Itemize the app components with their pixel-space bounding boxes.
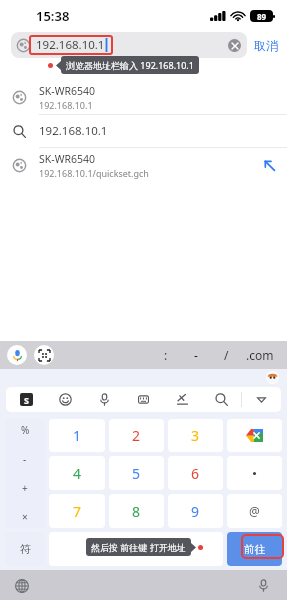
button[interactable]: At sign [227,494,282,528]
staticText: - [23,452,27,466]
button[interactable]: Search [202,387,241,412]
staticText: 89 [257,11,267,22]
button[interactable]: 取消 [254,38,278,53]
staticText: @ [249,503,260,519]
staticText: - [194,347,198,363]
staticText: S [24,394,29,406]
staticText: SK-WR6540 [39,152,95,166]
button[interactable]: Clear text [228,39,241,52]
button[interactable]: 返回 [49,532,223,566]
staticText: + [22,481,28,495]
staticText: × [22,510,28,524]
staticText: 192.168.10.1 [36,37,105,53]
staticText: 1 [73,426,82,445]
button[interactable]: Voice input [7,345,27,365]
staticText: 5 [132,464,141,483]
staticText: 192.168.10.1 [39,123,108,139]
button[interactable]: SK-WR6540 [0,148,287,182]
staticText: / [224,347,229,363]
staticText: 7 [73,502,82,521]
staticText: 8 [132,502,141,521]
button[interactable]: 前往 [227,532,282,566]
button[interactable]: 3 [168,419,223,452]
button[interactable]: Switch language [14,578,29,593]
button[interactable]: 192.168.10.1 [11,32,247,58]
button[interactable]: Sogou menu [6,387,46,412]
button[interactable]: / [211,341,241,369]
staticText: % [21,423,30,437]
button[interactable]: Collapse keyboard [242,387,281,412]
button[interactable]: 5 [109,456,164,490]
button[interactable]: Handwriting [163,387,202,412]
staticText: 192.168.10.1 [39,99,93,111]
staticText: 返回 [125,542,147,556]
button[interactable]: 9 [168,494,223,528]
button[interactable]: Assistant [266,371,279,384]
button[interactable]: .com [241,341,279,369]
staticText: 3 [191,426,200,445]
button[interactable]: 符 [5,532,45,566]
button[interactable]: Backspace [227,419,282,452]
staticText: 取消 [254,38,278,53]
button[interactable]: Voice [85,387,124,412]
staticText: SK-WR6540 [39,84,95,98]
button[interactable]: % [5,419,45,528]
button[interactable]: 1 [49,419,105,452]
button[interactable]: Dictation [256,578,271,593]
staticText: 15:38 [36,7,70,25]
staticText: 然后按 前往键 打开地址 [91,541,186,553]
staticText: 前往 [244,543,265,556]
button[interactable]: 7 [49,494,105,528]
staticText: 192.168.10.1/quickset.gch [39,167,149,179]
staticText: 9 [191,502,200,521]
button[interactable]: 8 [109,494,164,528]
button[interactable]: Emoji [46,387,85,412]
button[interactable]: Scan code [34,345,54,365]
button[interactable]: 6 [168,456,223,490]
button[interactable]: 2 [109,419,164,452]
button[interactable]: SK-WR6540 [0,80,287,114]
staticText: 4 [73,464,82,483]
staticText: 符 [20,542,31,556]
button[interactable]: 192.168.10.1 [0,115,287,147]
button[interactable]: Period [227,456,282,490]
staticText: 6 [191,464,200,483]
staticText: 浏览器地址栏输入 192.168.10.1 [66,59,194,71]
button[interactable]: 4 [49,456,105,490]
other: Open suggestion [264,160,275,171]
button[interactable]: : [151,341,181,369]
staticText: 2 [132,426,141,445]
button[interactable]: Keyboard layout [124,387,163,412]
staticText: .com [246,347,274,363]
button[interactable]: - [181,341,211,369]
staticText: : [164,347,168,363]
